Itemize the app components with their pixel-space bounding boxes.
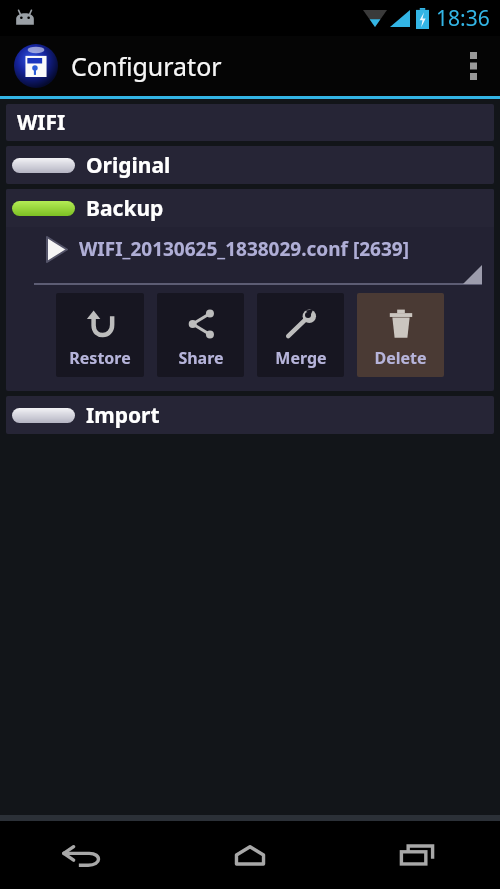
button[interactable]: WIFI_20130625_1838029.conf [2639] xyxy=(6,227,494,271)
button[interactable]: Import xyxy=(6,396,494,434)
staticText: Configurator xyxy=(71,49,222,83)
button[interactable]: Delete xyxy=(357,293,444,377)
staticText: Restore xyxy=(69,347,131,369)
staticText: Import xyxy=(86,401,160,430)
staticText: WIFI_20130625_1838029.conf [2639] xyxy=(79,236,409,262)
button[interactable]: Share xyxy=(157,293,244,377)
button[interactable]: Restore xyxy=(56,293,144,377)
button[interactable]: WIFI xyxy=(6,104,494,141)
button[interactable]: Backup xyxy=(6,189,494,227)
staticText: Merge xyxy=(275,347,327,369)
staticText: WIFI xyxy=(17,108,66,137)
staticText: 18:36 xyxy=(436,4,490,33)
staticText: Share xyxy=(178,347,224,369)
button[interactable]: Back xyxy=(0,821,166,889)
staticText: Delete xyxy=(374,347,427,369)
button[interactable]: More options xyxy=(446,36,500,96)
button[interactable]: Original xyxy=(6,146,494,184)
button[interactable]: Merge xyxy=(257,293,344,377)
button[interactable]: Home xyxy=(166,821,333,889)
staticText: Original xyxy=(86,151,171,180)
button[interactable]: Recent apps xyxy=(333,821,500,889)
staticText: Backup xyxy=(86,194,164,223)
